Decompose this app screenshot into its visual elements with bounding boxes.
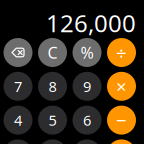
staticText: C — [47, 42, 57, 63]
staticText: 9 — [83, 77, 91, 96]
staticText: % — [80, 42, 93, 63]
button[interactable]: + — [107, 139, 136, 144]
staticText: 5 — [48, 110, 56, 130]
button[interactable]: C — [38, 38, 67, 67]
button[interactable]: 7 — [3, 72, 32, 101]
button[interactable]: 3 — [72, 139, 101, 144]
button[interactable]: ÷ — [107, 38, 136, 67]
button[interactable]: 4 — [3, 106, 32, 135]
staticText: 4 — [14, 110, 22, 130]
staticText: 126,000 — [46, 7, 136, 39]
button[interactable]: 1 — [3, 139, 32, 144]
button[interactable]: 6 — [72, 106, 101, 135]
staticText: 8 — [48, 77, 56, 96]
staticText: 7 — [14, 77, 22, 96]
button[interactable]: × — [107, 72, 136, 101]
staticText: ÷ — [116, 40, 127, 65]
staticText: 6 — [83, 110, 91, 130]
staticText: − — [116, 108, 127, 132]
button[interactable]: Delete — [3, 38, 32, 67]
staticText: × — [116, 74, 127, 99]
button[interactable]: 5 — [38, 106, 67, 135]
button[interactable]: − — [107, 106, 136, 135]
button[interactable]: 9 — [72, 72, 101, 101]
button[interactable]: % — [72, 38, 101, 67]
button[interactable]: 8 — [38, 72, 67, 101]
button[interactable]: 2 — [38, 139, 67, 144]
